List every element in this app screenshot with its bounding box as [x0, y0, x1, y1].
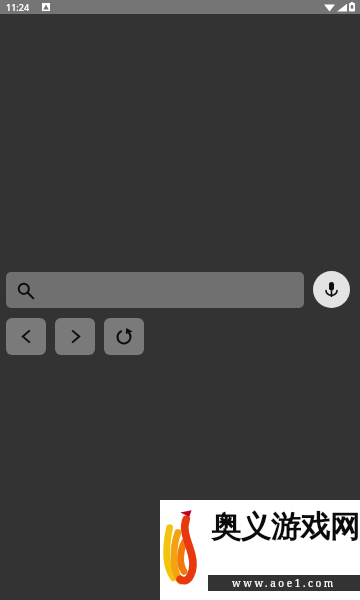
button[interactable]: Back [6, 318, 46, 355]
button[interactable]: Forward [55, 318, 95, 355]
staticText: 11:24 [6, 1, 30, 13]
button[interactable]: Voice search [313, 271, 350, 308]
staticText: www.aoe1.com [232, 576, 336, 590]
button[interactable]: Refresh [104, 318, 144, 355]
button[interactable] [6, 272, 304, 308]
staticText: 奥义游戏网 [211, 508, 360, 546]
